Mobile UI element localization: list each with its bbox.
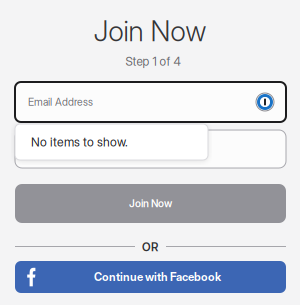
staticText: Email Address — [28, 96, 93, 108]
staticText: No items to show. — [31, 135, 128, 149]
staticText: Continue with Facebook — [94, 270, 221, 284]
button[interactable]: Join Now — [15, 184, 286, 223]
staticText: OR — [142, 240, 158, 254]
staticText: Join Now — [93, 14, 206, 48]
staticText: Step 1 of 4 — [125, 54, 180, 69]
staticText: Join Now — [129, 197, 172, 210]
button[interactable]: Continue with Facebook — [15, 261, 286, 293]
